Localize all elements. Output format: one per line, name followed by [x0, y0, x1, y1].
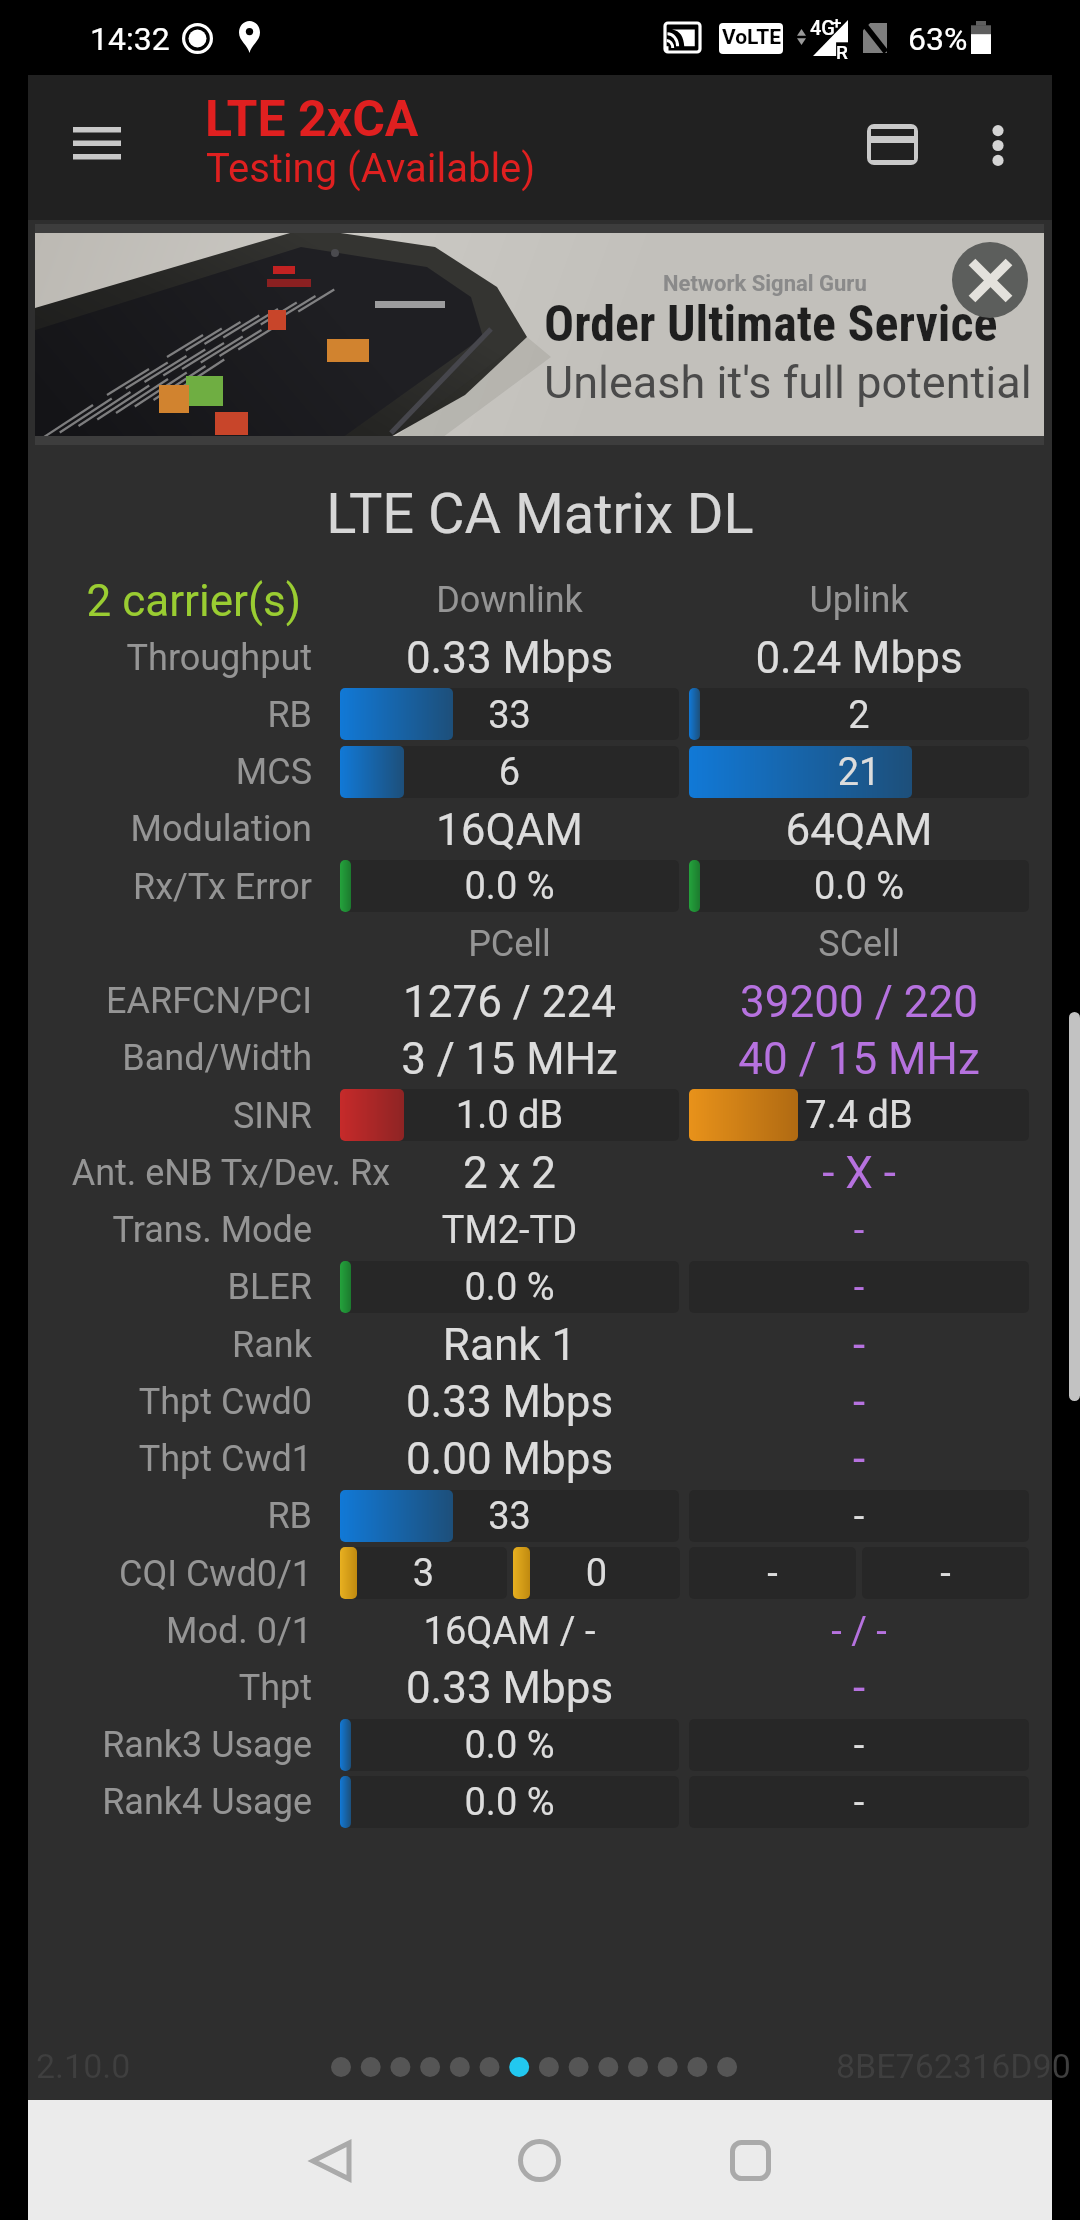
staticText: Band/Width	[0, 1037, 312, 1079]
staticText: Trans. Mode	[0, 1209, 312, 1251]
staticText: Order Ultimate Service	[544, 295, 998, 354]
staticText: 16QAM / -	[340, 1609, 679, 1654]
staticText: 0.0 %	[689, 864, 1029, 909]
staticText: Thpt Cwd1	[0, 1438, 312, 1480]
staticText: 0.00 Mbps	[340, 1433, 679, 1485]
staticText: 0.33 Mbps	[340, 632, 679, 684]
staticText: 21	[689, 750, 1029, 795]
staticText: 6	[340, 750, 679, 795]
staticText: RB	[0, 694, 312, 736]
staticText: Uplink	[689, 579, 1029, 621]
staticText: Ant. eNB Tx/Dev. Rx	[0, 1152, 390, 1194]
staticText: 16QAM	[340, 804, 679, 856]
staticText: Rx/Tx Error	[0, 866, 312, 908]
staticText: 1.0 dB	[340, 1093, 679, 1138]
staticText: SINR	[0, 1095, 312, 1137]
staticText: MCS	[0, 751, 312, 793]
staticText: Unleash it's full potential	[544, 356, 1032, 409]
staticText: 0.0 %	[340, 864, 679, 909]
staticText: -	[689, 1662, 1029, 1714]
staticText: Network Signal Guru	[663, 271, 867, 297]
staticText: RB	[0, 1495, 312, 1537]
staticText: PCell	[340, 923, 679, 965]
staticText: 2.10.0	[36, 2046, 131, 2086]
staticText: -	[689, 1319, 1029, 1371]
staticText: 1276 / 224	[340, 976, 679, 1028]
staticText: 0.24 Mbps	[689, 632, 1029, 684]
button[interactable]: Navigation menu	[38, 79, 156, 206]
staticText: +	[832, 13, 842, 33]
staticText: SCell	[689, 923, 1029, 965]
staticText: - X -	[689, 1147, 1029, 1199]
staticText: 8BE762316D90	[836, 2046, 1071, 2086]
staticText: - / -	[689, 1609, 1029, 1654]
staticText: 40 / 15 MHz	[689, 1033, 1029, 1085]
staticText: -	[689, 1376, 1029, 1428]
staticText: 0.33 Mbps	[340, 1376, 679, 1428]
staticText: 0.33 Mbps	[340, 1662, 679, 1714]
button[interactable]: Switch layout	[837, 81, 947, 208]
staticText: Rank	[0, 1324, 312, 1366]
staticText: 63%	[908, 20, 968, 58]
staticText: 33	[340, 1494, 679, 1539]
staticText: 0.0 %	[340, 1780, 679, 1825]
staticText: R	[836, 41, 848, 63]
staticText: Downlink	[340, 579, 679, 621]
staticText: LTE 2xCA	[205, 90, 419, 149]
staticText: Thpt Cwd0	[0, 1381, 312, 1423]
staticText: 2 carrier(s)	[0, 575, 301, 627]
staticText: TM2-TD	[340, 1208, 679, 1253]
staticText: BLER	[0, 1266, 312, 1308]
staticText: 0.0 %	[340, 1723, 679, 1768]
staticText: Mod. 0/1	[0, 1610, 312, 1652]
staticText: -	[689, 1551, 856, 1596]
staticText: EARFCN/PCI	[0, 980, 312, 1022]
button[interactable]: Back	[276, 2108, 386, 2213]
staticText: -	[689, 1433, 1029, 1485]
button[interactable]: LTE 2xCA	[183, 84, 803, 211]
staticText: -	[862, 1551, 1029, 1596]
staticText: VoLTE	[722, 25, 781, 50]
staticText: -	[689, 1265, 1029, 1310]
staticText: 4G	[810, 16, 835, 39]
staticText: -	[689, 1208, 1029, 1253]
staticText: Testing (Available)	[206, 145, 536, 192]
staticText: 0.0 %	[340, 1265, 679, 1310]
staticText: Throughput	[0, 637, 312, 679]
staticText: CQI Cwd0/1	[0, 1553, 312, 1595]
staticText: 0	[513, 1551, 680, 1596]
staticText: LTE CA Matrix DL	[28, 481, 1052, 547]
button[interactable]: Home	[484, 2108, 594, 2213]
staticText: Rank 1	[340, 1319, 679, 1371]
staticText: -	[689, 1494, 1029, 1539]
staticText: Thpt	[0, 1667, 312, 1709]
button[interactable]: Recent apps	[695, 2108, 805, 2213]
staticText: 33	[340, 693, 679, 738]
staticText: 64QAM	[689, 804, 1029, 856]
button[interactable]: Network Signal Guru	[35, 233, 1044, 436]
button[interactable]: More options	[958, 82, 1038, 209]
staticText: 2	[689, 693, 1029, 738]
button[interactable]: Close advertisement	[952, 242, 1028, 318]
staticText: 3	[340, 1551, 507, 1596]
staticText: 7.4 dB	[689, 1093, 1029, 1138]
staticText: -	[689, 1723, 1029, 1768]
staticText: Rank4 Usage	[0, 1781, 312, 1823]
staticText: Modulation	[0, 808, 312, 850]
staticText: -	[689, 1780, 1029, 1825]
staticText: 14:32	[90, 20, 170, 58]
staticText: 3 / 15 MHz	[340, 1033, 679, 1085]
staticText: 2 x 2	[340, 1147, 679, 1199]
staticText: Rank3 Usage	[0, 1724, 312, 1766]
staticText: 39200 / 220	[689, 976, 1029, 1028]
